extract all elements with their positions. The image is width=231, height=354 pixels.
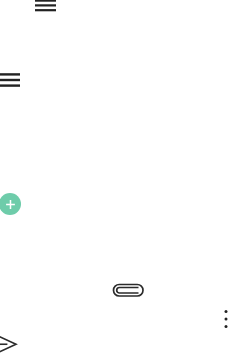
button[interactable]: More options	[218, 307, 231, 331]
button[interactable]: Navigation menu	[0, 72, 20, 89]
button[interactable]: Add	[0, 193, 21, 215]
button[interactable]: Send	[0, 335, 18, 354]
button[interactable]: Attach file	[112, 282, 145, 299]
button[interactable]: Menu	[35, 0, 56, 14]
